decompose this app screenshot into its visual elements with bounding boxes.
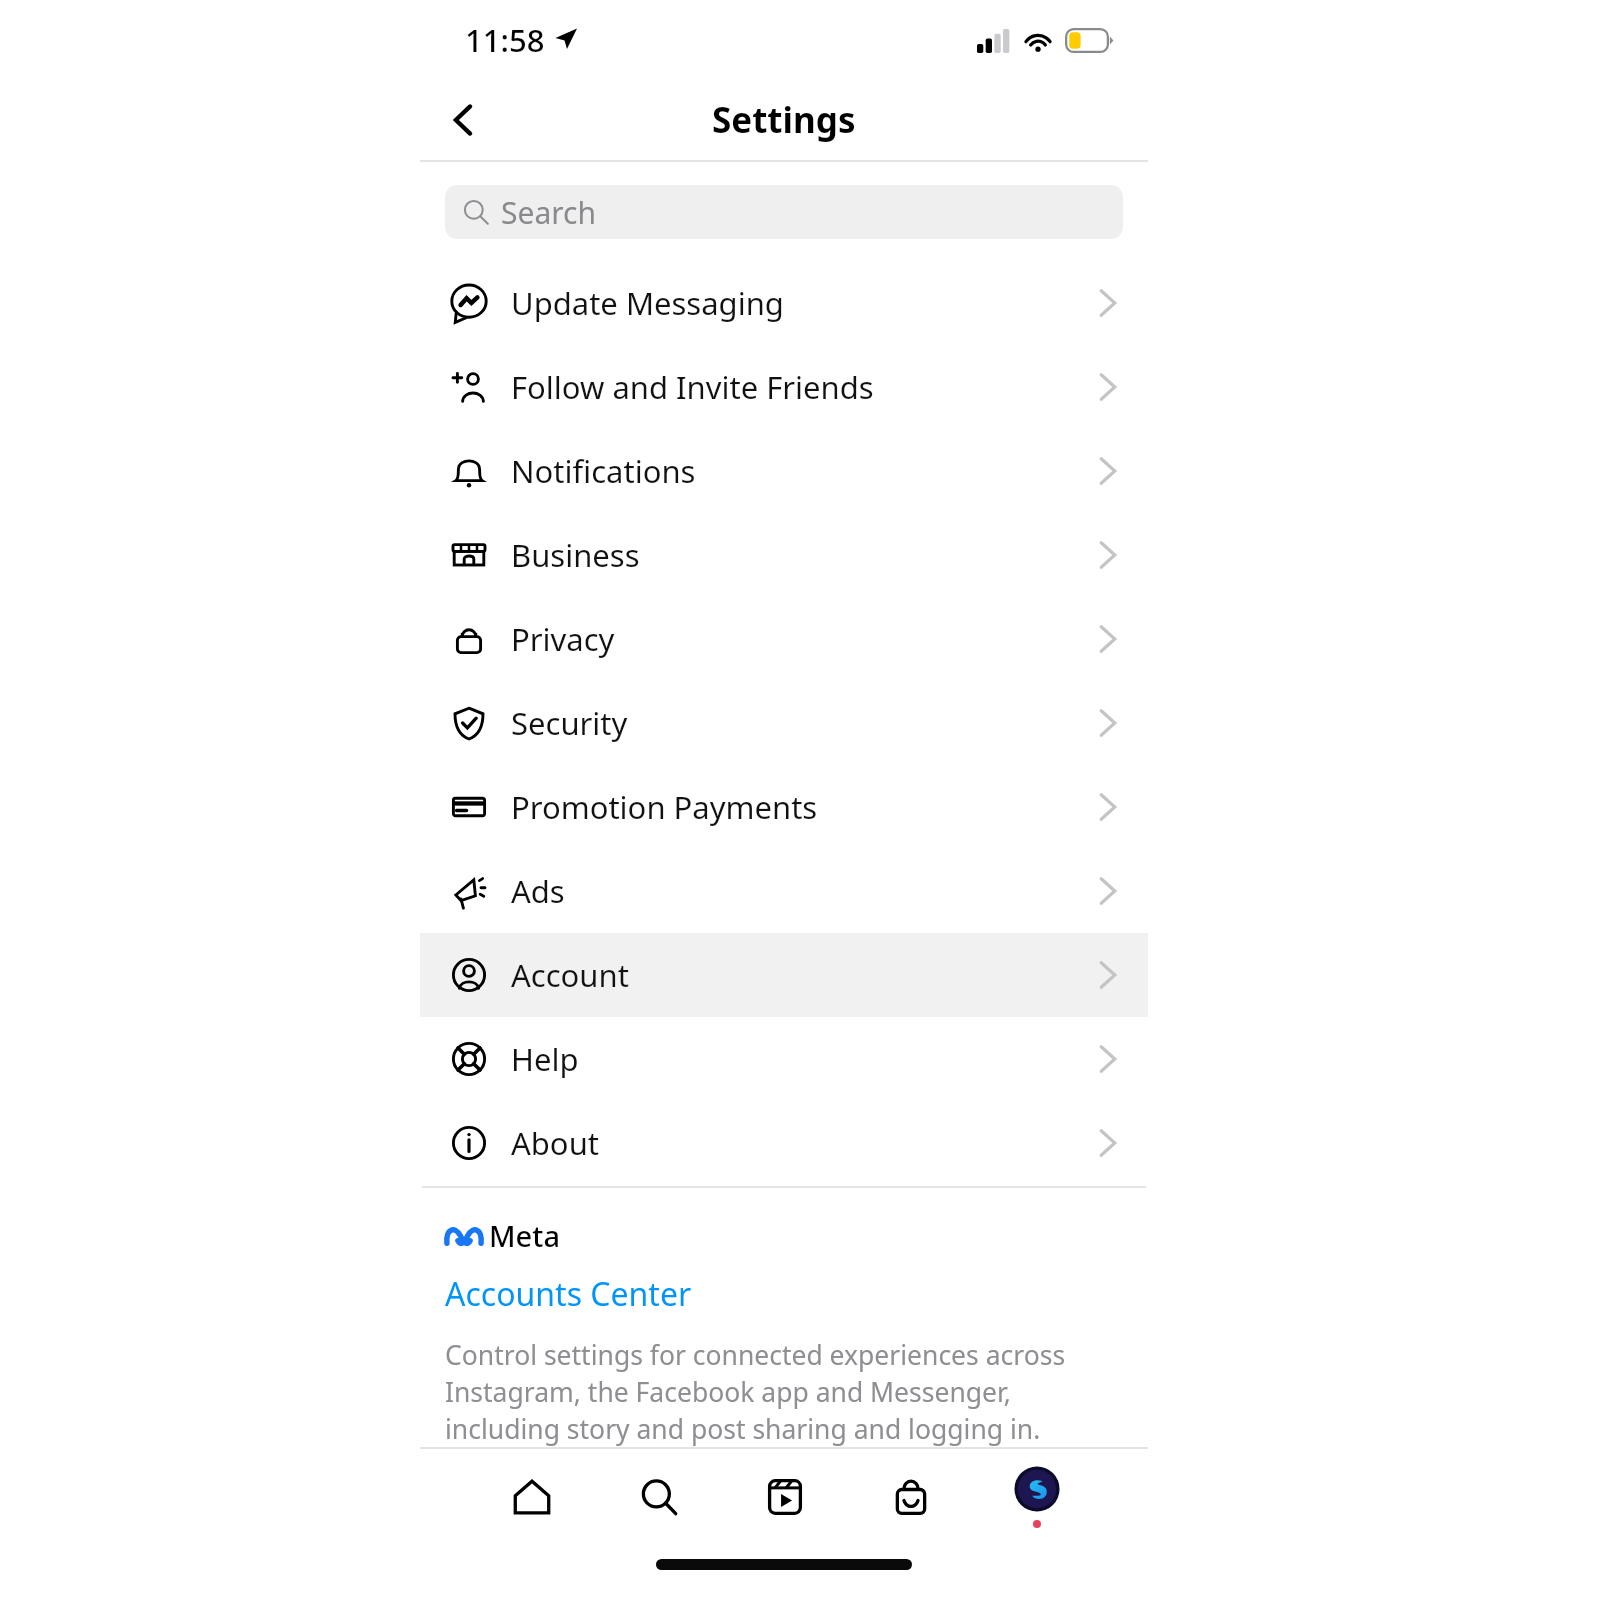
button[interactable]: About (420, 1101, 1148, 1185)
button[interactable]: Ads (420, 849, 1148, 933)
staticText: Security (511, 702, 628, 744)
button[interactable]: Back (436, 92, 492, 148)
staticText: Settings (712, 96, 856, 144)
button[interactable]: Accounts Center (445, 1272, 692, 1316)
staticText: 11:58 (465, 19, 545, 61)
staticText: Help (511, 1038, 579, 1080)
staticText: Privacy (511, 618, 615, 660)
staticText: Search (501, 192, 596, 233)
button[interactable]: Profile (974, 1449, 1100, 1544)
button[interactable]: Security (420, 681, 1148, 765)
staticText: Promotion Payments (511, 786, 818, 828)
button[interactable]: Search (595, 1449, 722, 1544)
button[interactable]: Follow and Invite Friends (420, 345, 1148, 429)
button[interactable]: Home (468, 1449, 595, 1544)
button[interactable]: Update Messaging (420, 261, 1148, 345)
staticText: Follow and Invite Friends (511, 366, 874, 408)
staticText: Account (511, 954, 629, 996)
button[interactable]: Shop (848, 1449, 974, 1544)
button[interactable]: Help (420, 1017, 1148, 1101)
button[interactable]: Business (420, 513, 1148, 597)
staticText: Ads (511, 870, 565, 912)
staticText: Meta (489, 1216, 560, 1255)
button[interactable]: Search (445, 185, 1123, 239)
button[interactable]: Notifications (420, 429, 1148, 513)
staticText: Accounts Center (445, 1272, 692, 1316)
button[interactable]: Privacy (420, 597, 1148, 681)
staticText: About (511, 1122, 599, 1164)
staticText: Update Messaging (511, 282, 784, 324)
button[interactable]: Promotion Payments (420, 765, 1148, 849)
button[interactable]: Account (420, 933, 1148, 1017)
button[interactable]: Reels (722, 1449, 848, 1544)
staticText: Control settings for connected experienc… (445, 1337, 1116, 1447)
staticText: Notifications (511, 450, 696, 492)
staticText: Business (511, 534, 640, 576)
